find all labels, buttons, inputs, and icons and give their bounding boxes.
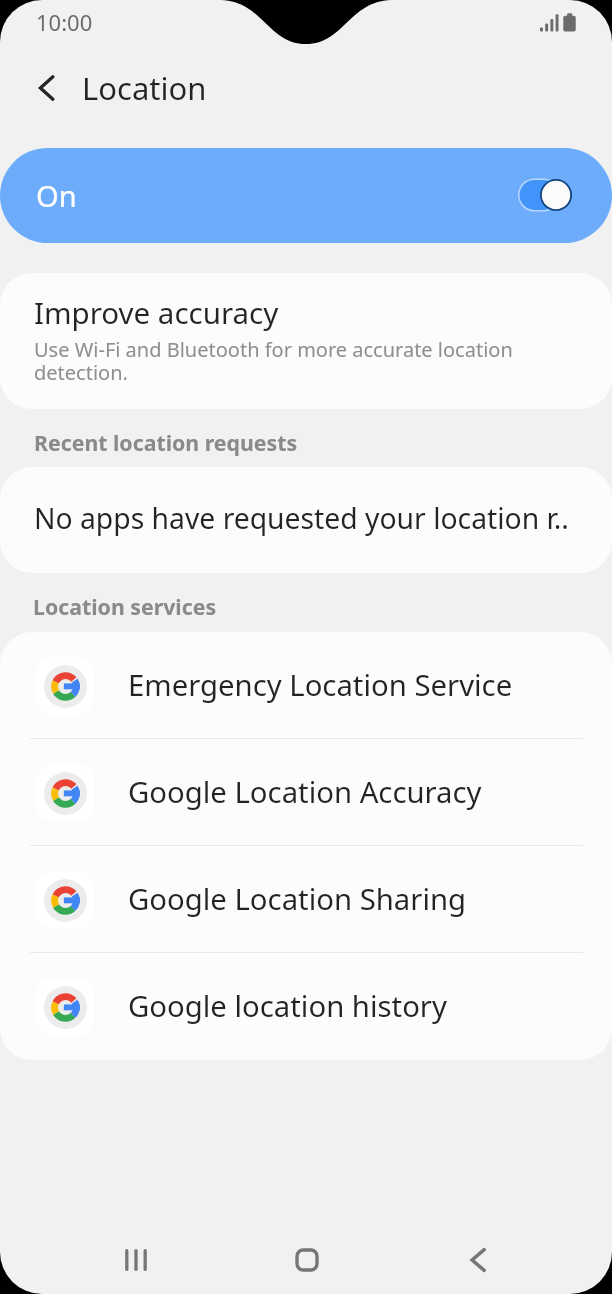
button[interactable]: Google Location Sharing: [0, 846, 612, 953]
button[interactable]: Back: [438, 1225, 518, 1294]
staticText: Location: [82, 67, 207, 109]
staticText: No apps have requested your location r..: [34, 499, 569, 538]
staticText: Location services: [33, 592, 217, 621]
staticText: On: [36, 176, 77, 215]
button[interactable]: Home: [267, 1225, 347, 1294]
button[interactable]: No apps have requested your location r..: [0, 467, 612, 573]
button[interactable]: Google location history: [0, 953, 612, 1060]
staticText: 10:00: [36, 7, 93, 37]
button[interactable]: Google Location Accuracy: [0, 739, 612, 846]
button[interactable]: Emergency Location Service: [0, 632, 612, 739]
staticText: Google Location Accuracy: [128, 772, 482, 812]
staticText: Google location history: [128, 986, 447, 1026]
button[interactable]: Recent apps: [96, 1225, 176, 1294]
staticText: Emergency Location Service: [128, 665, 513, 705]
button[interactable]: Improve accuracy: [0, 273, 612, 409]
button[interactable]: Back: [22, 64, 70, 112]
button[interactable]: On: [0, 148, 612, 243]
staticText: Use Wi-Fi and Bluetooth for more accurat…: [34, 336, 550, 386]
staticText: Improve accuracy: [34, 292, 279, 332]
staticText: Recent location requests: [34, 428, 298, 457]
staticText: Google Location Sharing: [128, 879, 467, 919]
